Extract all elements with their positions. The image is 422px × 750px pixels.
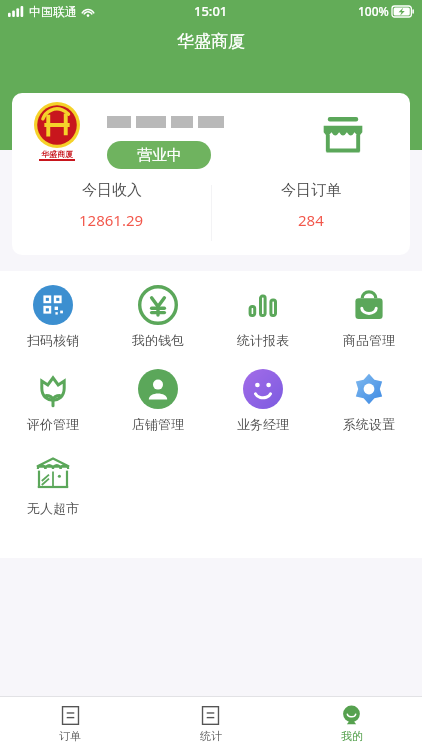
button[interactable]: 店铺 xyxy=(320,111,366,157)
button[interactable]: 扫码核销 xyxy=(0,285,105,348)
staticText: 订单 xyxy=(59,729,81,743)
button[interactable]: 我的钱包 xyxy=(105,285,210,348)
staticText: 统计 xyxy=(200,729,222,743)
staticText: 今日订单 xyxy=(281,181,341,200)
staticText: 扫码核销 xyxy=(27,332,79,348)
staticText: 统计报表 xyxy=(237,332,289,348)
staticText: 华盛商厦 xyxy=(177,31,245,52)
staticText: 无人超市 xyxy=(27,500,79,516)
button[interactable]: 业务经理 xyxy=(210,369,316,432)
button[interactable]: 统计报表 xyxy=(210,285,316,348)
staticText: 商品管理 xyxy=(343,332,395,348)
staticText: 我的钱包 xyxy=(132,332,184,348)
button[interactable]: 评价管理 xyxy=(0,369,105,432)
button[interactable]: 今日订单 xyxy=(211,181,410,230)
staticText: 今日收入 xyxy=(82,181,142,200)
staticText: 系统设置 xyxy=(343,416,395,432)
button[interactable]: 店铺管理 xyxy=(105,369,210,432)
staticText: 评价管理 xyxy=(27,416,79,432)
button[interactable]: 无人超市 xyxy=(0,453,105,516)
staticText: 12861.29 xyxy=(79,210,144,230)
button[interactable]: 营业中 xyxy=(107,141,211,169)
button[interactable]: 订单 xyxy=(0,697,140,750)
staticText: 店铺管理 xyxy=(132,416,184,432)
staticText: 营业中 xyxy=(137,146,182,165)
staticText: 284 xyxy=(298,210,324,230)
button[interactable]: 我的 xyxy=(281,697,422,750)
button[interactable]: 系统设置 xyxy=(316,369,422,432)
staticText: 我的 xyxy=(341,729,363,743)
staticText: 中国联通 xyxy=(29,4,77,19)
button[interactable]: 今日收入 xyxy=(12,181,211,230)
staticText: 华盛商厦 xyxy=(41,149,73,159)
staticText: 100% xyxy=(358,3,389,19)
button[interactable]: 统计 xyxy=(140,697,281,750)
button[interactable]: 商品管理 xyxy=(316,285,422,348)
staticText: 业务经理 xyxy=(237,416,289,432)
button[interactable]: 华盛商厦 xyxy=(12,93,410,255)
staticText: 15:01 xyxy=(194,2,228,20)
